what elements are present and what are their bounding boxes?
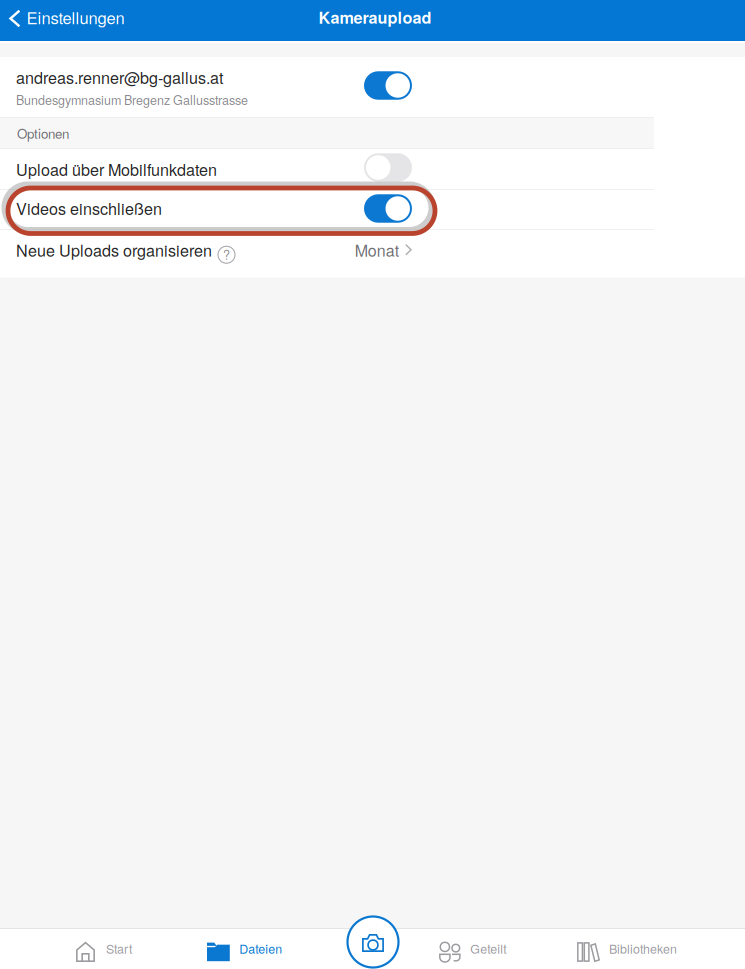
button[interactable]: Einstellungen [0,0,140,37]
button[interactable]: Dateien [207,928,288,969]
staticText: Dateien [239,940,282,957]
button[interactable]: Upload über Mobilfunkdaten [0,149,654,189]
staticText: Neue Uploads organisieren [16,238,212,261]
staticText: Einstellungen [27,5,125,29]
button[interactable]: Neue Uploads organisieren [0,230,654,277]
staticText: ? [223,245,230,263]
button[interactable]: andreas.renner@bg-gallus.at [0,57,654,117]
button[interactable]: Start [76,928,138,969]
staticText: andreas.renner@bg-gallus.at [16,65,223,89]
staticText: Bundesgymnasium Bregenz Gallusstrasse [16,91,248,108]
button[interactable]: Geteilt [439,928,512,969]
staticText: Upload über Mobilfunkdaten [16,157,217,180]
button[interactable]: Bibliotheken [577,928,683,969]
staticText: Start [106,940,132,957]
staticText: Geteilt [470,940,506,957]
staticText: Monat [355,238,399,261]
staticText: Bibliotheken [609,940,677,957]
staticText: Videos einschließen [16,196,162,219]
staticText: Kameraupload [318,5,431,29]
button[interactable]: Kamera [346,915,400,969]
button[interactable]: Videos einschließen [0,190,654,229]
staticText: Optionen [17,123,69,143]
